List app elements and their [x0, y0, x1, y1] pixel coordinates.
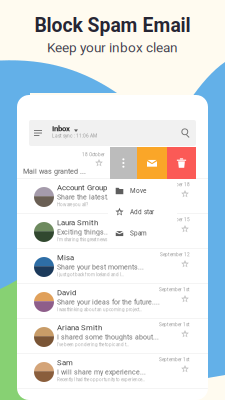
- staticText: Spam: [130, 230, 147, 237]
- staticText: Laura Smith: [57, 218, 98, 227]
- staticText: 18 October: [82, 152, 105, 157]
- staticText: Sam: [57, 358, 73, 367]
- button[interactable]: Account Group: [17, 179, 208, 214]
- button[interactable]: Laura Smith: [17, 214, 208, 249]
- button[interactable]: Delete: [167, 147, 196, 179]
- button[interactable]: Menu: [29, 120, 47, 146]
- staticText: Account Group: [57, 183, 107, 192]
- staticText: September 1st: [159, 287, 190, 292]
- staticText: Exciting things...: [57, 228, 110, 236]
- staticText: How are you all?: [57, 202, 88, 207]
- button[interactable]: Ariana Smith: [17, 319, 208, 354]
- staticText: Last sync : 11:06 AM: [52, 133, 97, 139]
- staticText: I will share my experience...: [57, 368, 146, 376]
- button[interactable]: Sam: [17, 354, 208, 389]
- button[interactable]: Misa: [17, 249, 208, 284]
- staticText: Share the latest...: [57, 193, 113, 201]
- button[interactable]: Archive: [137, 147, 167, 179]
- button[interactable]: David: [17, 284, 208, 319]
- staticText: Inbox: [52, 124, 70, 133]
- staticText: Add star: [130, 208, 154, 216]
- staticText: Ariana Smith: [57, 323, 102, 332]
- button[interactable]: More: [110, 147, 137, 179]
- staticText: Recently I had the opportunity to experi…: [57, 377, 145, 382]
- staticText: Misa: [57, 253, 74, 262]
- staticText: Move: [130, 187, 146, 194]
- staticText: Keep your inbox clean: [47, 40, 178, 56]
- button[interactable]: Search: [176, 120, 196, 146]
- staticText: I was thinking about an upcoming project…: [57, 307, 142, 312]
- staticText: September 1st: [159, 357, 190, 362]
- staticText: September 1st: [159, 322, 190, 327]
- staticText: I've been pondering the topic and t...: [57, 342, 129, 347]
- staticText: September 15: [160, 217, 190, 222]
- button[interactable]: Move: [108, 180, 177, 201]
- staticText: Share your ideas for the future....: [57, 298, 160, 306]
- button[interactable]: Add star: [108, 201, 177, 223]
- staticText: I just got back from Iceland and I...: [57, 272, 124, 277]
- staticText: September 18: [160, 182, 190, 187]
- staticText: Mail was granted ...: [23, 167, 86, 175]
- staticText: Share your best moments...: [57, 263, 144, 271]
- staticText: I shared some thoughts about...: [57, 333, 159, 341]
- staticText: I'm sharing this great news with you ab.…: [57, 237, 133, 242]
- staticText: Block Spam Email: [34, 14, 190, 37]
- staticText: September 12: [160, 252, 190, 257]
- staticText: David: [57, 288, 76, 297]
- button[interactable]: Spam: [108, 223, 177, 244]
